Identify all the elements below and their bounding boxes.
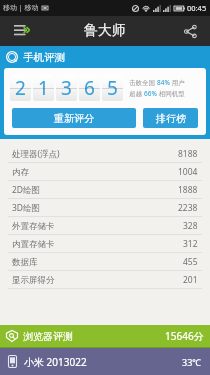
staticText: 小米 2013022 [24, 355, 87, 369]
staticText: 66% [144, 89, 157, 98]
button[interactable]: 内存 [0, 163, 210, 181]
staticText: 84% [157, 78, 170, 87]
button[interactable]: 外置存储卡 [0, 217, 210, 235]
staticText: 00:45 [187, 3, 207, 13]
staticText: 鲁大师 [84, 22, 126, 40]
staticText: 312 [183, 238, 198, 250]
staticText: 浏览器评测 [23, 330, 73, 343]
staticText: 2 [15, 75, 26, 101]
staticText: 处理器(浮点) [12, 148, 60, 160]
button[interactable]: Share [170, 16, 210, 46]
button[interactable]: Menu [0, 16, 44, 46]
button[interactable]: 排行榜 [143, 108, 198, 128]
staticText: 排行榜 [156, 112, 186, 125]
button[interactable]: 数据库 [0, 253, 210, 271]
staticText: 重新评分 [54, 112, 94, 125]
button[interactable]: 显示屏得分 [0, 271, 210, 289]
staticText: 201 [183, 274, 198, 286]
staticText: 1 [38, 75, 49, 101]
staticText: 3D绘图 [12, 202, 41, 214]
staticText: 2238 [178, 202, 198, 214]
staticText: 1004 [178, 166, 198, 178]
staticText: 3 [61, 75, 72, 101]
button[interactable]: 小米 2013022 [0, 348, 210, 375]
staticText: 33℃ [182, 356, 202, 368]
button[interactable]: 2D绘图 [0, 181, 210, 199]
button[interactable]: 3D绘图 [0, 199, 210, 217]
button[interactable]: 重新评分 [12, 108, 136, 128]
staticText: 内存 [12, 167, 29, 178]
staticText: 用户 [170, 78, 185, 87]
staticText: 击败全国 [129, 78, 157, 87]
staticText: 6 [84, 75, 95, 101]
staticText: 2D绘图 [12, 184, 41, 196]
staticText: 数据库 [12, 257, 38, 268]
button[interactable]: 处理器(浮点) [0, 145, 210, 163]
staticText: 移动 | 移动 [3, 3, 39, 13]
staticText: 手机评测 [23, 51, 65, 64]
staticText: 15646分 [165, 329, 204, 343]
staticText: 328 [183, 220, 198, 232]
button[interactable]: 浏览器评测 [0, 325, 210, 347]
staticText: 8188 [178, 148, 198, 160]
staticText: 超越 [129, 89, 144, 98]
staticText: 455 [183, 256, 198, 268]
staticText: 显示屏得分 [12, 275, 55, 286]
staticText: 相同机型 [157, 89, 185, 98]
staticText: 内置存储卡 [12, 239, 55, 250]
staticText: 1888 [178, 184, 198, 196]
staticText: 5 [107, 75, 118, 101]
staticText: 外置存储卡 [12, 221, 55, 232]
button[interactable]: 内置存储卡 [0, 235, 210, 253]
